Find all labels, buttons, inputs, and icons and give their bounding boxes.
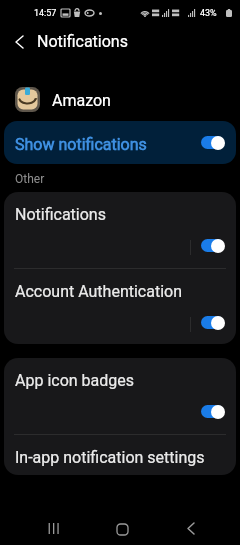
staticText: App icon badges [15,371,135,390]
staticText: Show notifications [15,135,147,154]
staticText: 14:57 [34,8,57,19]
button[interactable]: App icon badges [4,358,236,434]
button[interactable]: Back [7,26,32,58]
button[interactable]: Toggle [200,404,225,419]
button[interactable]: In-app notification settings [4,435,236,474]
button[interactable]: Toggle [200,135,225,150]
staticText: Account Authentication [15,282,182,301]
staticText: Notifications [15,205,106,224]
button[interactable]: Home [86,509,156,543]
staticText: In-app notification settings [15,448,205,467]
button[interactable]: Notifications [4,192,236,268]
button[interactable]: Toggle [200,315,225,330]
staticText: Notifications [37,32,128,51]
staticText: Amazon [52,91,111,110]
button[interactable]: Show notifications [4,121,236,164]
button[interactable]: Toggle [200,238,225,253]
button[interactable]: Recent apps [18,509,88,543]
staticText: 43% [200,8,217,19]
button[interactable]: Account Authentication [4,269,236,344]
button[interactable]: Back [156,509,226,543]
staticText: Other [15,172,45,186]
